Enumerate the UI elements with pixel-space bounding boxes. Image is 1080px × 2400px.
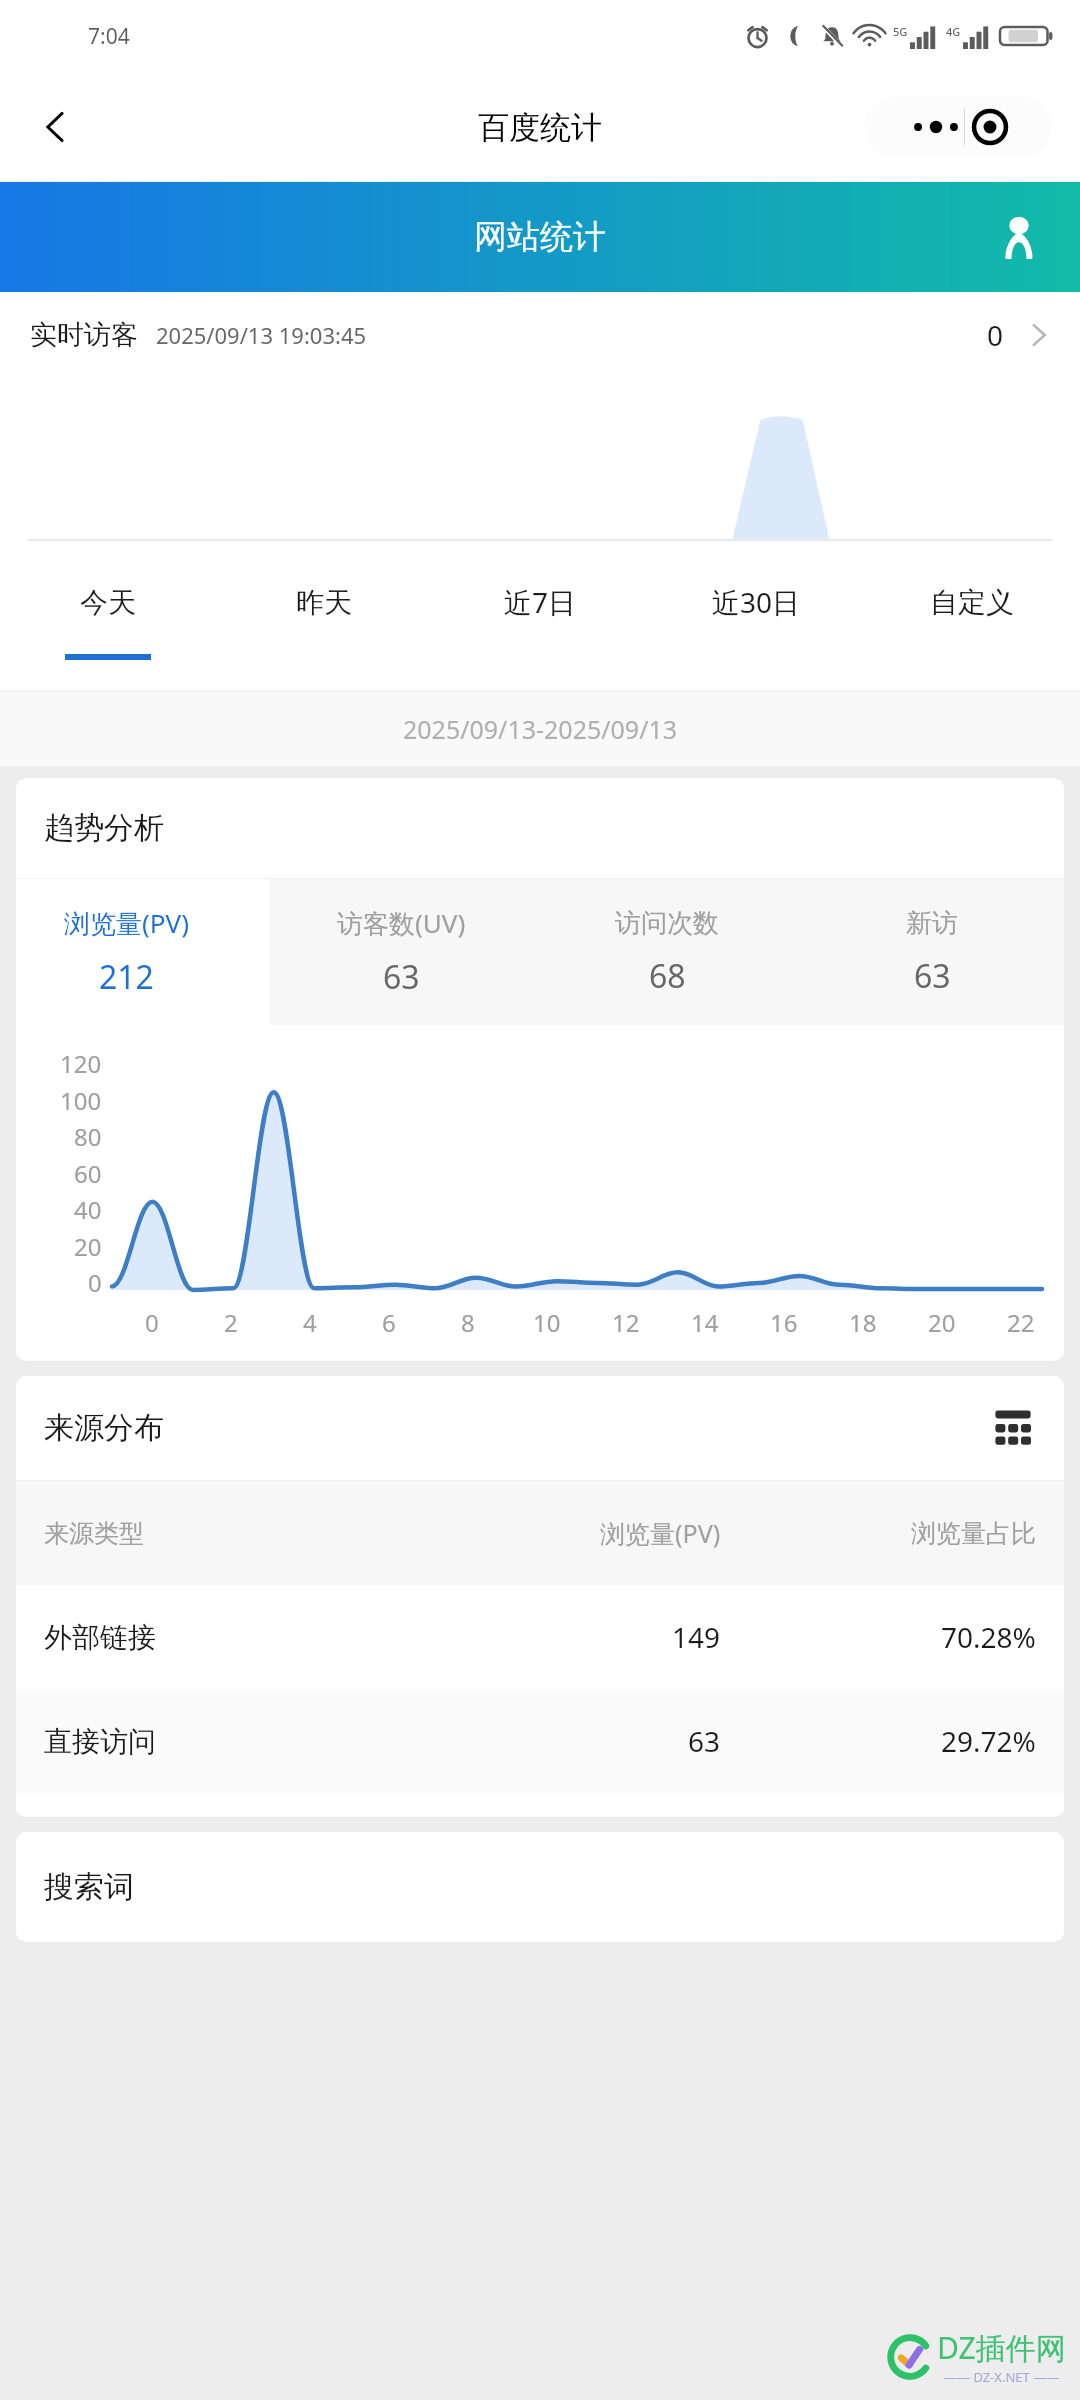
staticText: 百度统计 bbox=[478, 108, 602, 147]
button[interactable]: 访问次数 bbox=[534, 879, 799, 1025]
staticText: 63 bbox=[383, 955, 420, 999]
staticText: 4G bbox=[946, 24, 961, 39]
button[interactable]: Menu and close bbox=[864, 96, 1052, 158]
staticText: 80 bbox=[74, 1120, 102, 1153]
staticText: 近7日 bbox=[504, 583, 577, 621]
staticText: 访问次数 bbox=[615, 907, 719, 940]
staticText: 浏览量(PV) bbox=[600, 1516, 721, 1550]
staticText: 29.72% bbox=[941, 1722, 1036, 1760]
button[interactable]: 新访 bbox=[799, 879, 1064, 1025]
staticText: 2025/09/13 19:03:45 bbox=[156, 320, 367, 350]
staticText: 12 bbox=[612, 1306, 640, 1339]
staticText: 昨天 bbox=[296, 585, 352, 620]
staticText: 近30日 bbox=[712, 583, 801, 621]
staticText: 来源分布 bbox=[44, 1409, 164, 1447]
button[interactable]: 今天 bbox=[0, 552, 216, 692]
staticText: 新访 bbox=[906, 907, 958, 940]
staticText: 8 bbox=[461, 1306, 475, 1339]
staticText: 5G bbox=[893, 24, 908, 39]
staticText: 直接访问 bbox=[44, 1724, 156, 1759]
staticText: 来源类型 bbox=[44, 1518, 144, 1549]
button[interactable]: Account bbox=[988, 206, 1050, 268]
staticText: 68 bbox=[649, 954, 686, 998]
staticText: 搜索词 bbox=[44, 1868, 134, 1906]
button[interactable]: 外部链接 bbox=[44, 1585, 1036, 1689]
staticText: 16 bbox=[770, 1306, 798, 1339]
staticText: 6 bbox=[382, 1306, 396, 1339]
staticText: 120 bbox=[60, 1047, 102, 1080]
staticText: 10 bbox=[533, 1306, 561, 1339]
staticText: 14 bbox=[691, 1306, 719, 1339]
button[interactable]: 近7日 bbox=[432, 552, 648, 692]
staticText: 40 bbox=[74, 1193, 102, 1226]
staticText: 20 bbox=[74, 1230, 102, 1263]
button[interactable]: 实时访客 bbox=[0, 292, 1080, 552]
staticText: 0 bbox=[987, 316, 1004, 354]
staticText: 2 bbox=[224, 1306, 238, 1339]
button[interactable]: 昨天 bbox=[216, 552, 432, 692]
staticText: 100 bbox=[60, 1084, 102, 1117]
staticText: 网站统计 bbox=[474, 216, 606, 258]
staticText: —— DZ-X.NET —— bbox=[944, 2368, 1060, 2386]
staticText: 4 bbox=[303, 1306, 317, 1339]
staticText: 趋势分析 bbox=[44, 809, 164, 847]
staticText: 63 bbox=[688, 1722, 721, 1760]
button[interactable]: Table view bbox=[986, 1401, 1040, 1455]
staticText: 20 bbox=[928, 1306, 956, 1339]
button[interactable]: 直接访问 bbox=[44, 1689, 1036, 1793]
staticText: 22 bbox=[1007, 1306, 1035, 1339]
staticText: 浏览量占比 bbox=[911, 1518, 1036, 1549]
button[interactable]: 浏览量(PV) bbox=[16, 879, 269, 1025]
staticText: 7:04 bbox=[88, 22, 130, 51]
staticText: 18 bbox=[849, 1306, 877, 1339]
button[interactable]: 来源类型 bbox=[44, 1481, 1036, 1585]
staticText: 访客数(UV) bbox=[337, 905, 466, 941]
staticText: 70.28% bbox=[941, 1618, 1036, 1656]
staticText: 149 bbox=[672, 1618, 721, 1656]
staticText: 今天 bbox=[80, 585, 136, 620]
button[interactable]: Back bbox=[20, 91, 92, 163]
staticText: 自定义 bbox=[930, 585, 1014, 620]
button[interactable]: 访客数(UV) bbox=[269, 879, 534, 1025]
staticText: 外部链接 bbox=[44, 1620, 156, 1655]
button[interactable]: 近30日 bbox=[648, 552, 864, 692]
staticText: 实时访客 bbox=[30, 318, 138, 352]
staticText: 212 bbox=[99, 955, 154, 999]
staticText: 2025/09/13-2025/09/13 bbox=[403, 712, 678, 746]
staticText: 60 bbox=[74, 1157, 102, 1190]
staticText: 0 bbox=[88, 1266, 102, 1299]
button[interactable]: 自定义 bbox=[864, 552, 1080, 692]
staticText: 0 bbox=[145, 1306, 159, 1339]
staticText: DZ插件网 bbox=[937, 2327, 1066, 2368]
staticText: 浏览量(PV) bbox=[64, 905, 189, 941]
staticText: 63 bbox=[914, 954, 951, 998]
